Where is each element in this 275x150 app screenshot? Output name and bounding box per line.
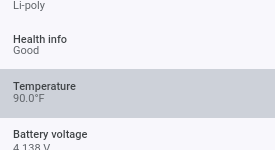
- button[interactable]: Health info: [0, 22, 275, 69]
- staticText: Li-poly: [13, 0, 45, 12]
- staticText: Good: [13, 44, 40, 57]
- button[interactable]: Battery voltage: [0, 118, 275, 150]
- staticText: 90.0°F: [13, 92, 45, 105]
- staticText: Temperature: [13, 80, 76, 93]
- staticText: 4.138 V: [13, 142, 51, 150]
- button[interactable]: Temperature: [0, 69, 275, 118]
- staticText: Health info: [13, 33, 68, 46]
- staticText: Battery voltage: [13, 128, 88, 141]
